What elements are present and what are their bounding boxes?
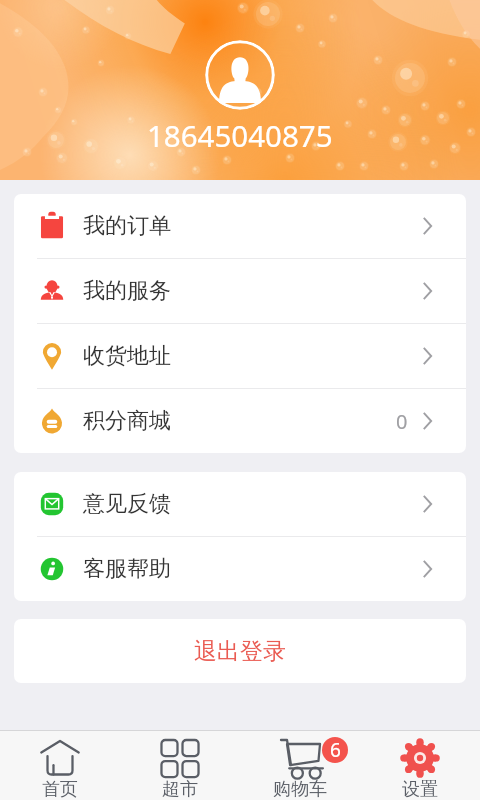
button[interactable]: 退出登录 <box>14 619 466 683</box>
staticText: 我的服务 <box>83 277 171 305</box>
button[interactable]: 积分商城 <box>14 389 466 453</box>
button[interactable]: Profile avatar <box>205 40 275 110</box>
staticText: 我的订单 <box>83 212 171 240</box>
button[interactable]: 客服帮助 <box>14 537 466 601</box>
staticText: 6 <box>330 737 341 763</box>
button[interactable]: 收货地址 <box>14 324 466 388</box>
staticText: 积分商城 <box>83 407 171 435</box>
staticText: 客服帮助 <box>83 555 171 583</box>
staticText: 意见反馈 <box>83 490 171 518</box>
button[interactable]: 我的服务 <box>14 259 466 323</box>
staticText: 18645040875 <box>147 115 333 155</box>
staticText: 设置 <box>402 778 438 800</box>
staticText: 退出登录 <box>194 637 286 666</box>
staticText: 购物车 <box>273 778 327 800</box>
button[interactable]: 我的订单 <box>14 194 466 258</box>
button[interactable]: 意见反馈 <box>14 472 466 536</box>
staticText: 收货地址 <box>83 342 171 370</box>
button[interactable]: 超市 <box>120 731 240 800</box>
button[interactable]: 设置 <box>360 731 480 800</box>
staticText: 超市 <box>162 778 198 800</box>
button[interactable]: 首页 <box>0 731 120 800</box>
staticText: 首页 <box>42 778 78 800</box>
button[interactable]: 6 <box>240 731 360 800</box>
staticText: 0 <box>396 408 408 435</box>
